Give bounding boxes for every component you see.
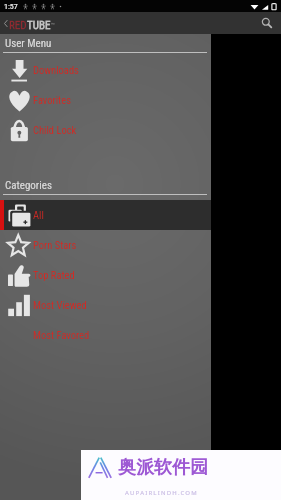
staticText: ™	[51, 21, 55, 27]
staticText: Most Viewed	[33, 299, 87, 311]
staticText: Top Rated	[33, 269, 75, 281]
staticText: Porn Stars	[33, 239, 77, 251]
staticText: 1:57	[4, 2, 18, 11]
staticText: Favorites	[33, 94, 71, 106]
button[interactable]: Child Lock	[0, 115, 211, 145]
staticText: Downloads	[33, 64, 79, 76]
button[interactable]: Favorites	[0, 85, 211, 115]
button[interactable]: Most Viewed	[0, 290, 211, 320]
button[interactable]: All	[0, 200, 211, 230]
staticText: AUPAIRLINDH.COM	[125, 489, 198, 497]
button[interactable]: Search	[259, 15, 275, 31]
button[interactable]: Top Rated	[0, 260, 211, 290]
button[interactable]: Most Favored	[0, 320, 211, 350]
staticText: Child Lock	[33, 124, 77, 136]
button[interactable]: Back	[0, 18, 11, 29]
staticText: User Menu	[5, 37, 52, 50]
staticText: RED	[9, 19, 27, 32]
button[interactable]: Porn Stars	[0, 230, 211, 260]
button[interactable]: Downloads	[0, 55, 211, 85]
staticText: Most Favored	[33, 329, 90, 341]
staticText: All	[33, 209, 44, 221]
staticText: 奥派软件园	[118, 456, 208, 479]
staticText: Categories	[5, 179, 52, 192]
staticText: TUBE	[27, 19, 51, 32]
